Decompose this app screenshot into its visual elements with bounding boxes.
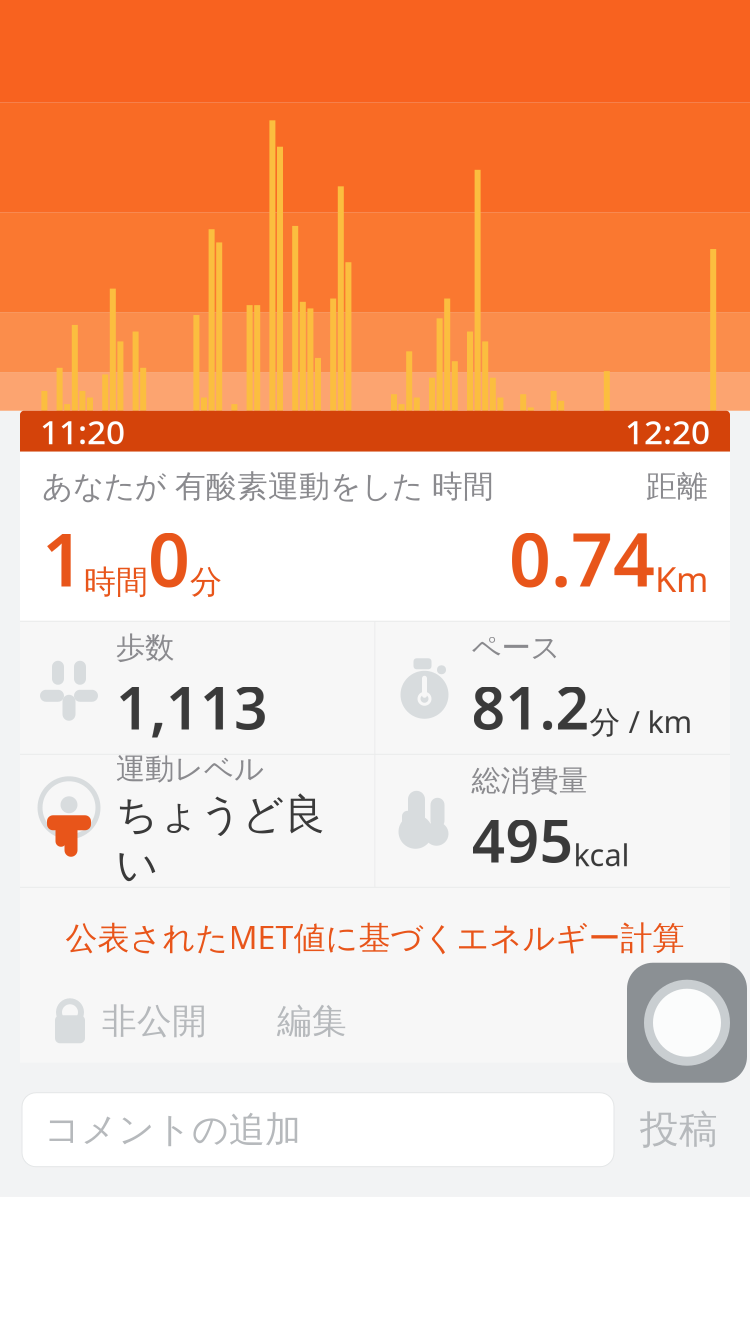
staticText: 81.2 (471, 668, 589, 746)
staticText: 分 (190, 562, 222, 602)
button[interactable]: 総消費量 (375, 755, 730, 887)
button[interactable]: 歩数 (20, 622, 374, 754)
staticText: 運動レベル (116, 751, 264, 787)
staticText: 1,113 (116, 668, 268, 746)
button[interactable]: 非公開 (20, 986, 207, 1056)
button[interactable]: Camera (627, 963, 747, 1083)
staticText: 11:20 (40, 409, 125, 453)
button[interactable]: コメントの追加 (22, 1093, 614, 1167)
staticText: 0.74 (509, 509, 655, 607)
staticText: ペース (471, 630, 560, 666)
staticText: 1 (42, 509, 84, 607)
staticText: 0 (148, 509, 190, 607)
button[interactable]: 運動レベル (20, 755, 374, 887)
staticText: 距離 (646, 468, 708, 505)
staticText: 歩数 (116, 630, 174, 666)
button[interactable]: 公表されたMET値に基づくエネルギー計算 (20, 888, 730, 986)
staticText: コメントの追加 (44, 1108, 301, 1152)
staticText: 非公開 (102, 1000, 207, 1043)
button[interactable]: ペース (375, 622, 730, 754)
staticText: kcal (573, 834, 629, 875)
staticText: 公表されたMET値に基づくエネルギー計算 (65, 916, 684, 958)
staticText: 総消費量 (471, 763, 587, 799)
staticText: 495 (471, 801, 573, 879)
staticText: Km (655, 556, 708, 602)
staticText: ちょうど良い (116, 789, 325, 890)
staticText: 編集 (277, 1000, 347, 1043)
staticText: あなたが 有酸素運動をした 時間 (42, 468, 494, 505)
staticText: 分 / km (589, 701, 692, 742)
staticText: 12:20 (625, 409, 710, 453)
staticText: 時間 (84, 562, 148, 602)
button[interactable]: 投稿 (614, 1093, 744, 1167)
staticText: 投稿 (640, 1106, 718, 1153)
button[interactable]: 編集 (207, 986, 347, 1056)
